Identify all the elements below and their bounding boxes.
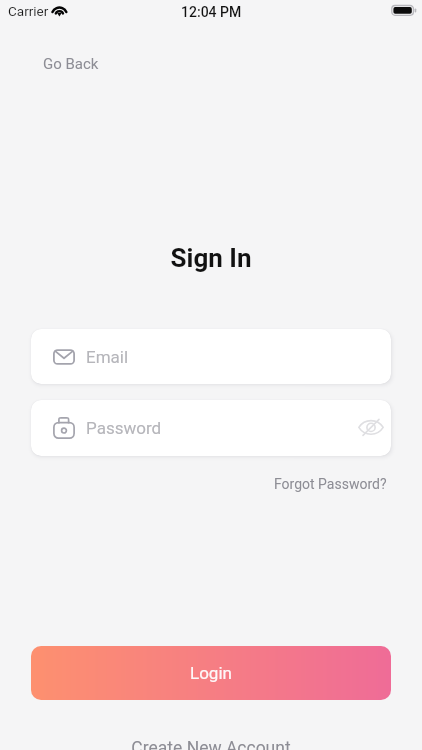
button[interactable]: Login — [31, 646, 391, 700]
staticText: Go Back — [43, 55, 99, 73]
button[interactable]: Go Back — [31, 47, 111, 81]
button[interactable]: Create New Account — [0, 738, 422, 750]
staticText: Forgot Password? — [274, 476, 387, 492]
button[interactable]: Forgot Password? — [274, 476, 387, 492]
staticText: 12:04 PM — [181, 4, 242, 20]
button[interactable]: Show password — [357, 413, 385, 443]
button[interactable]: Email — [31, 329, 391, 384]
button[interactable]: Password — [31, 400, 391, 456]
staticText: Password — [86, 418, 162, 438]
staticText: Sign In — [0, 243, 422, 273]
staticText: Email — [86, 347, 129, 367]
staticText: Login — [190, 663, 232, 683]
staticText: Carrier — [8, 3, 49, 19]
